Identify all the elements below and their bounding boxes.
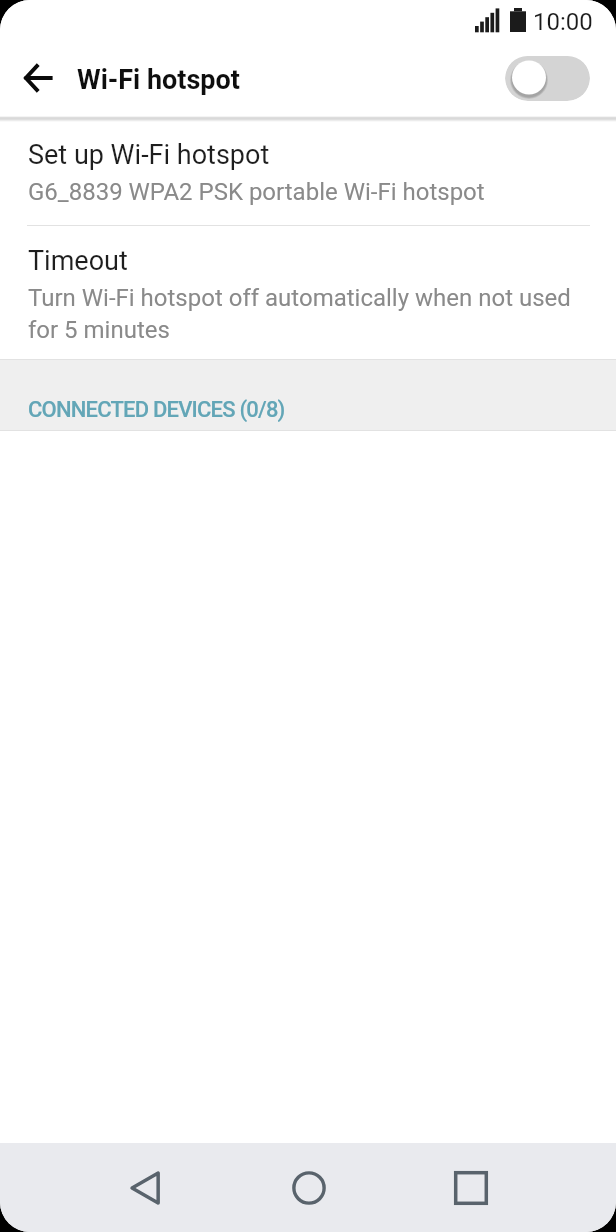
staticText: Set up Wi-Fi hotspot	[28, 139, 270, 171]
button[interactable]: Recent apps	[390, 1143, 553, 1232]
staticText: G6_8839 WPA2 PSK portable Wi-Fi hotspot	[28, 178, 485, 206]
button[interactable]: Timeout	[0, 226, 616, 359]
staticText: Wi-Fi hotspot	[77, 64, 240, 96]
staticText: CONNECTED DEVICES (0/8)	[28, 397, 285, 423]
button[interactable]: Wi-Fi hotspot on/off	[505, 55, 590, 101]
staticText: 10:00	[533, 8, 593, 36]
button[interactable]: Set up Wi-Fi hotspot	[0, 122, 616, 225]
staticText: Timeout	[28, 245, 128, 277]
staticText: Turn Wi-Fi hotspot off automatically whe…	[28, 284, 588, 344]
button[interactable]: Home	[227, 1143, 390, 1232]
button[interactable]: Back	[64, 1143, 227, 1232]
button[interactable]: Navigate up	[6, 46, 70, 110]
